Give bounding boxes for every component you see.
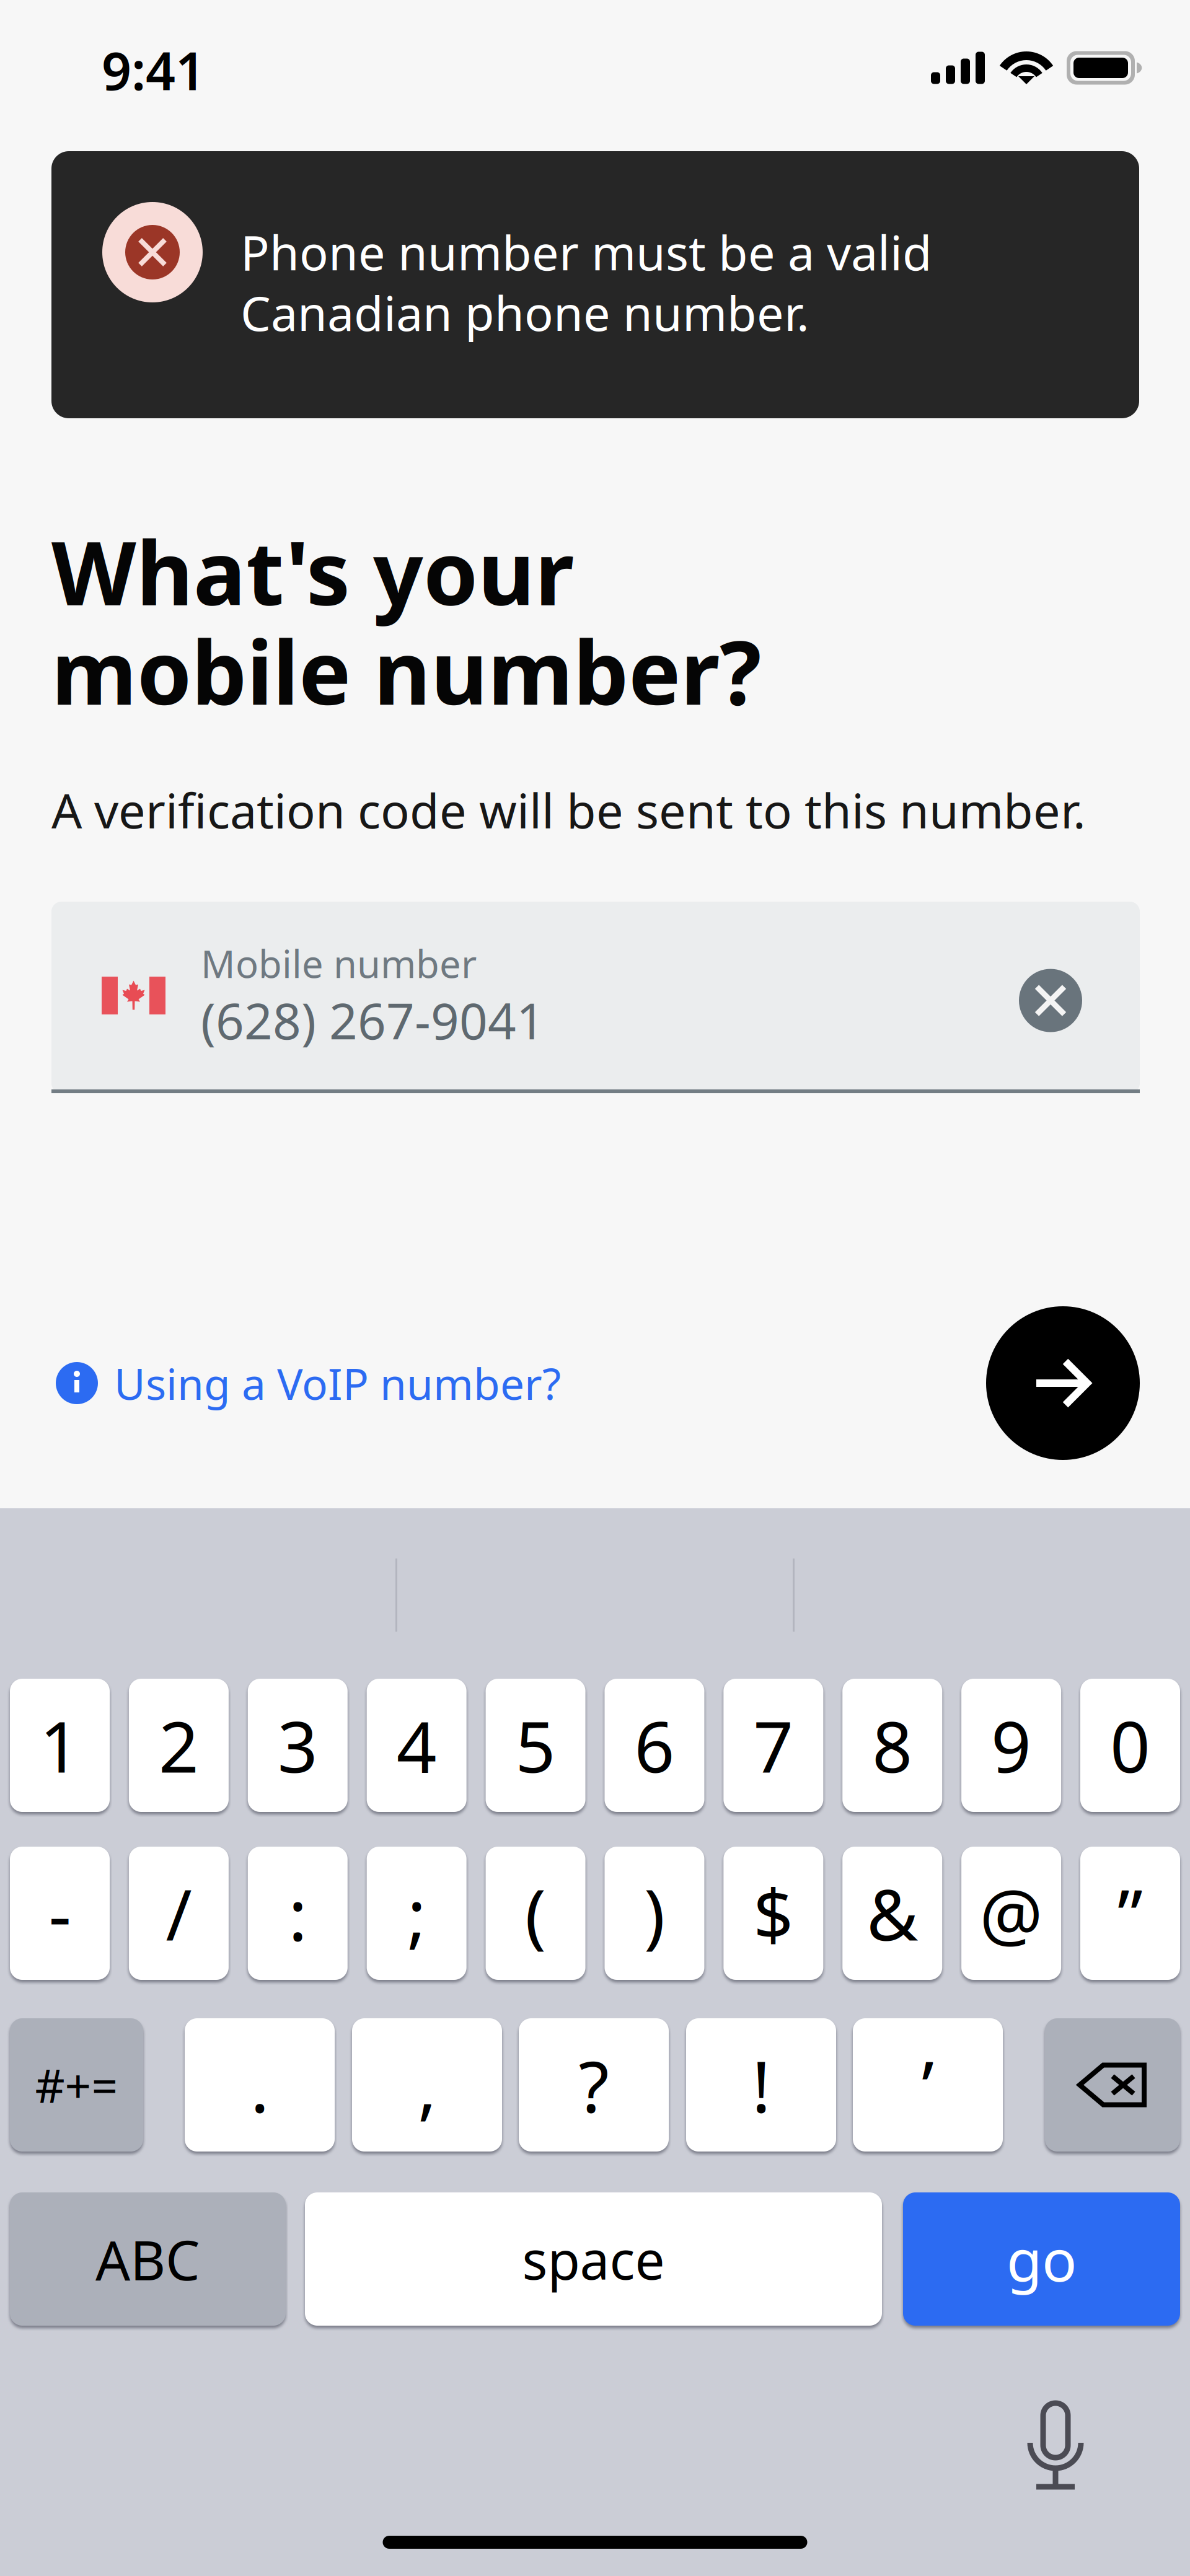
staticText: go — [1007, 2221, 1077, 2297]
staticText: A verification code will be sent to this… — [51, 778, 1086, 842]
button[interactable]: ) — [605, 1847, 704, 1980]
staticText: ( — [525, 1867, 546, 1960]
button[interactable]: : — [248, 1847, 348, 1980]
staticText: Mobile number — [201, 938, 477, 988]
button[interactable]: Delete — [1045, 2018, 1180, 2152]
button[interactable]: 5 — [486, 1679, 585, 1812]
button[interactable]: ’ — [853, 2018, 1003, 2152]
button[interactable]: / — [129, 1847, 229, 1980]
staticText: ABC — [95, 2223, 200, 2295]
staticText: / — [166, 1867, 192, 1960]
button[interactable]: go — [903, 2192, 1180, 2326]
button[interactable]: Clear text — [1019, 969, 1082, 1032]
button[interactable]: - — [10, 1847, 110, 1980]
staticText: mobile number? — [51, 613, 761, 729]
staticText: @ — [980, 1867, 1043, 1960]
staticText: 3 — [278, 1699, 318, 1792]
staticText: 1 — [40, 1699, 80, 1792]
staticText: ) — [644, 1867, 665, 1960]
staticText: 5 — [515, 1699, 556, 1792]
button[interactable]: 4 — [367, 1679, 467, 1812]
staticText: - — [49, 1867, 71, 1960]
staticText: Using a VoIP number? — [114, 1355, 561, 1412]
button[interactable]: 9 — [961, 1679, 1061, 1812]
staticText: 9 — [991, 1699, 1031, 1792]
staticText: 4 — [396, 1699, 437, 1792]
staticText: #+= — [35, 2054, 118, 2116]
button[interactable]: Dictate — [1025, 2401, 1086, 2490]
button[interactable]: 2 — [129, 1679, 229, 1812]
staticText: 9:41 — [102, 35, 205, 105]
staticText: ; — [407, 1867, 426, 1960]
staticText: ? — [579, 2038, 609, 2132]
button[interactable]: #+= — [10, 2018, 143, 2152]
staticText: & — [867, 1867, 918, 1960]
staticText: Phone number must be a valid — [240, 220, 932, 284]
button[interactable]: 3 — [248, 1679, 348, 1812]
staticText: Canadian phone number. — [240, 281, 809, 344]
staticText: space — [522, 2224, 665, 2294]
button[interactable]: $ — [723, 1847, 823, 1980]
button[interactable]: , — [352, 2018, 502, 2152]
staticText: $ — [753, 1867, 794, 1960]
staticText: : — [288, 1867, 307, 1960]
button[interactable]: ( — [486, 1847, 585, 1980]
staticText: 0 — [1110, 1699, 1150, 1792]
button[interactable]: @ — [961, 1847, 1061, 1980]
staticText: . — [250, 2038, 269, 2132]
button[interactable]: Continue — [986, 1306, 1140, 1460]
staticText: ! — [752, 2038, 770, 2132]
staticText: ” — [1117, 1867, 1143, 1960]
button[interactable]: ABC — [10, 2192, 286, 2326]
button[interactable]: Using a VoIP number? — [56, 1355, 561, 1412]
button[interactable]: ? — [519, 2018, 669, 2152]
staticText: 7 — [753, 1699, 794, 1792]
staticText: (628) 267-9041 — [201, 987, 545, 1053]
button[interactable]: ; — [367, 1847, 467, 1980]
button[interactable]: ! — [686, 2018, 836, 2152]
button[interactable]: & — [842, 1847, 942, 1980]
staticText: ’ — [922, 2038, 934, 2132]
button[interactable]: space — [305, 2192, 882, 2326]
button[interactable]: 1 — [10, 1679, 110, 1812]
button[interactable]: . — [185, 2018, 335, 2152]
button[interactable]: ” — [1080, 1847, 1180, 1980]
button[interactable]: 7 — [723, 1679, 823, 1812]
staticText: 6 — [634, 1699, 675, 1792]
staticText: 2 — [159, 1699, 199, 1792]
staticText: What's your — [51, 513, 574, 629]
button[interactable]: 0 — [1080, 1679, 1180, 1812]
staticText: , — [418, 2038, 436, 2132]
staticText: 8 — [872, 1699, 912, 1792]
button[interactable]: 6 — [605, 1679, 704, 1812]
button[interactable]: 8 — [842, 1679, 942, 1812]
